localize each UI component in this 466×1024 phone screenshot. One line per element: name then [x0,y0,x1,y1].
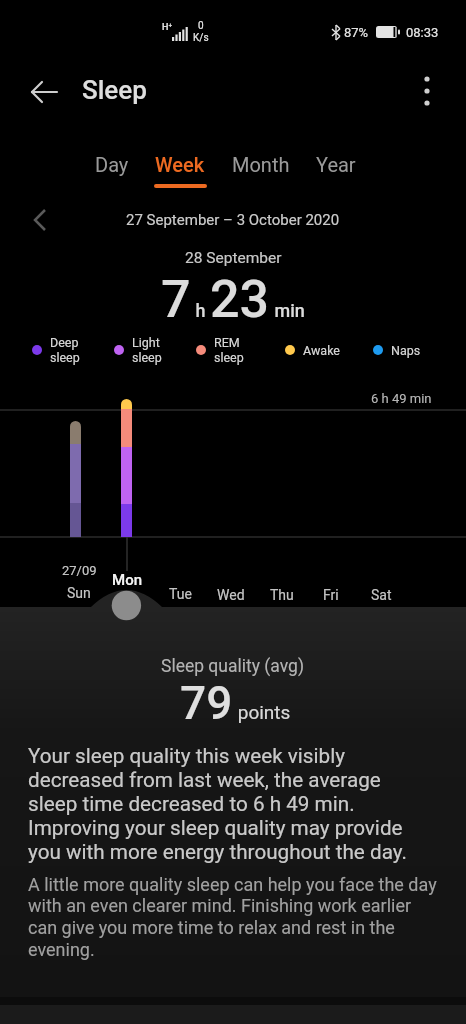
staticText: Deep sleep [50,335,80,365]
staticText: 28 September [185,249,282,267]
staticText: A little more quality sleep can help you… [28,874,437,961]
staticText: Day [95,153,129,176]
button[interactable] [34,210,48,230]
staticText: h [191,300,210,321]
staticText: H⁺ [162,22,173,33]
staticText: Thu [270,587,294,603]
staticText: Tue [169,586,192,602]
staticText: Week [155,153,205,176]
staticText: 08:33 [406,25,439,40]
staticText: 23 [210,269,270,330]
button[interactable]: Year [308,148,364,180]
staticText: Sleep [82,75,147,105]
staticText: 79 [180,676,233,730]
staticText: 6 h 49 min [371,391,432,406]
staticText: REM sleep [214,335,244,365]
staticText: Sleep quality (avg) [161,656,305,677]
staticText: 27 September – 3 October 2020 [126,211,340,229]
button[interactable]: Sleep quality (avg) [0,656,466,677]
staticText: 87% [344,25,369,40]
staticText: 27/09 [62,563,97,578]
staticText: Sun [67,585,91,601]
staticText: Mon [112,571,143,589]
button[interactable]: Week [145,148,215,188]
staticText: K/s [193,32,209,44]
staticText: 0 [198,20,204,32]
staticText: Fri [323,587,339,603]
button[interactable] [415,72,439,110]
staticText: Awake [303,343,340,358]
staticText: Month [232,153,290,176]
staticText: Light sleep [132,335,162,365]
staticText: Wed [217,587,245,603]
staticText: Sat [371,587,392,603]
button[interactable]: Day [82,148,142,180]
staticText: 7 [161,269,191,330]
staticText: min [270,300,305,321]
button[interactable] [30,78,58,106]
staticText: Year [316,153,356,176]
staticText: Your sleep quality this week visibly dec… [28,744,407,864]
staticText: points [233,701,291,723]
button[interactable]: Month [225,148,297,180]
staticText: Naps [391,343,421,358]
